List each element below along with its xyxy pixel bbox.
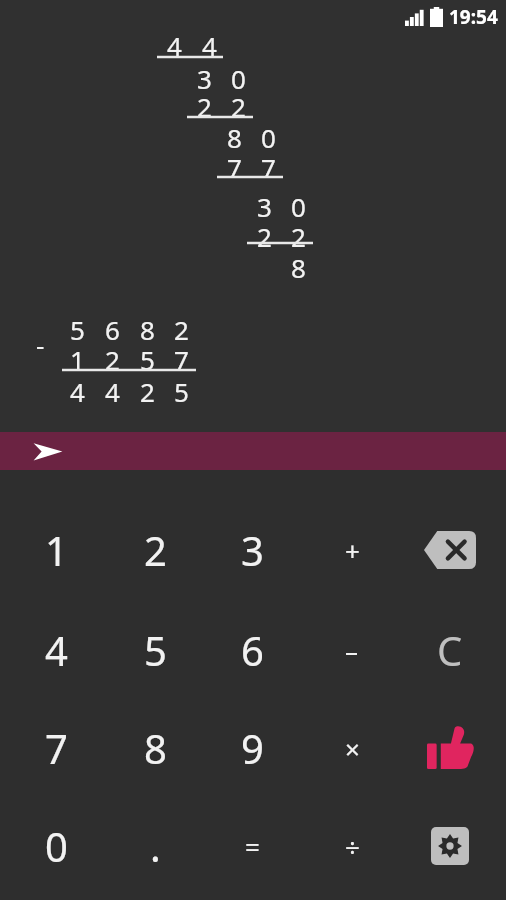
staticText: 3: [257, 189, 272, 224]
staticText: 9: [241, 721, 264, 775]
staticText: 5: [70, 312, 85, 347]
staticText: 8: [291, 250, 306, 285]
staticText: 2: [174, 312, 189, 347]
staticText: 2: [140, 374, 155, 409]
button[interactable]: 6: [203, 602, 301, 698]
staticText: 0: [45, 819, 68, 873]
staticText: –: [345, 633, 359, 668]
staticText: 0: [261, 120, 276, 155]
staticText: 8: [140, 312, 155, 347]
button[interactable]: Settings: [401, 798, 499, 894]
button[interactable]: 9: [203, 700, 301, 796]
staticText: +: [345, 533, 360, 568]
staticText: 6: [241, 623, 264, 677]
staticText: 7: [45, 721, 68, 775]
staticText: 2: [105, 342, 120, 377]
staticText: 4: [45, 623, 68, 677]
staticText: 6: [105, 312, 120, 347]
button[interactable]: 3: [203, 502, 301, 598]
button[interactable]: 4: [7, 602, 105, 698]
staticText: 2: [197, 89, 212, 124]
staticText: 5: [174, 374, 189, 409]
staticText: 1: [70, 342, 85, 377]
staticText: ×: [345, 731, 360, 766]
staticText: .: [150, 819, 161, 873]
staticText: 0: [231, 61, 246, 96]
staticText: C: [437, 623, 463, 677]
button[interactable]: C: [401, 602, 499, 698]
button[interactable]: =: [203, 798, 301, 894]
button[interactable]: ×: [303, 700, 401, 796]
button[interactable]: Backspace: [401, 502, 499, 598]
staticText: -: [36, 327, 45, 362]
staticText: 2: [144, 523, 167, 577]
button[interactable]: 1: [7, 502, 105, 598]
staticText: 4: [70, 374, 85, 409]
staticText: 7: [227, 150, 242, 185]
staticText: 8: [227, 120, 242, 155]
button[interactable]: 7: [7, 700, 105, 796]
button[interactable]: +: [303, 502, 401, 598]
staticText: 5: [140, 342, 155, 377]
staticText: 4: [167, 28, 182, 63]
staticText: 3: [241, 523, 264, 577]
button[interactable]: 8: [106, 700, 204, 796]
staticText: 2: [291, 219, 306, 254]
staticText: 4: [202, 28, 217, 63]
button[interactable]: Confirm: [401, 700, 499, 796]
staticText: 0: [291, 189, 306, 224]
button[interactable]: .: [106, 798, 204, 894]
staticText: ÷: [345, 829, 360, 864]
button[interactable]: 0: [7, 798, 105, 894]
button[interactable]: –: [303, 602, 401, 698]
staticText: 2: [257, 219, 272, 254]
staticText: =: [245, 829, 260, 864]
staticText: 19:54: [449, 4, 498, 30]
staticText: 1: [45, 523, 68, 577]
button[interactable]: 2: [106, 502, 204, 598]
staticText: 4: [105, 374, 120, 409]
button[interactable]: Run: [0, 432, 506, 470]
staticText: 2: [231, 89, 246, 124]
staticText: 5: [144, 623, 167, 677]
staticText: 3: [197, 61, 212, 96]
button[interactable]: ÷: [303, 798, 401, 894]
staticText: 7: [174, 342, 189, 377]
button[interactable]: 5: [106, 602, 204, 698]
staticText: 8: [144, 721, 167, 775]
staticText: 7: [261, 150, 276, 185]
